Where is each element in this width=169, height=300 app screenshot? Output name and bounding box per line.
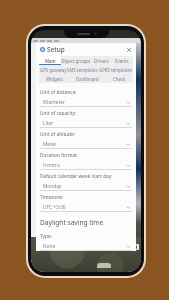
staticText: Main [45, 58, 56, 64]
button[interactable]: Drivers [91, 56, 111, 65]
staticText: Dashboard [76, 76, 99, 82]
staticText: Monday [43, 183, 62, 190]
staticText: Type: [40, 233, 52, 240]
staticText: Drivers [94, 58, 109, 64]
staticText: Kilometer [43, 99, 65, 106]
button[interactable]: Monday [40, 182, 132, 191]
staticText: Object groups [61, 58, 91, 64]
staticText: Unit of altitude: [40, 131, 76, 138]
button[interactable]: Meter [40, 140, 132, 149]
staticText: Unit of distance: [40, 89, 77, 96]
button[interactable]: Kilometer [40, 98, 132, 107]
button[interactable]: Dashboard [69, 74, 106, 83]
staticText: GPS gateway [40, 67, 67, 73]
button[interactable]: Object groups [61, 56, 91, 65]
staticText: Unit of capacity: [40, 110, 77, 117]
button[interactable]: Widgets [39, 74, 69, 83]
staticText: Events [115, 58, 129, 64]
staticText: Widgets [46, 76, 63, 82]
button[interactable]: None [40, 242, 132, 251]
staticText: Timezone: [40, 194, 64, 201]
button[interactable]: Events [111, 56, 133, 65]
staticText: Meter [43, 141, 57, 148]
staticText: Daylight saving time [40, 218, 104, 227]
staticText: None [43, 243, 56, 250]
staticText: Setup [47, 45, 65, 54]
button[interactable]: GPS gateway [39, 65, 67, 74]
button[interactable]: SMS templates [67, 65, 98, 74]
button[interactable]: Close [125, 46, 133, 54]
staticText: Duration format: [40, 152, 78, 159]
button[interactable]: Liter [40, 119, 132, 128]
staticText: SMS templates [67, 67, 98, 73]
staticText: Check [113, 76, 126, 82]
button[interactable]: UTC +3:00 [40, 203, 132, 212]
button[interactable]: Main [39, 56, 61, 65]
staticText: UTC +3:00 [43, 204, 66, 211]
staticText: Liter [43, 120, 54, 127]
button[interactable]: h:mm:s [40, 161, 132, 170]
staticText: GPRS templates [99, 67, 132, 73]
staticText: Default calendar week start day: [40, 173, 113, 180]
staticText: h:mm:s [43, 162, 60, 169]
button[interactable]: Check [106, 74, 133, 83]
button[interactable]: GPRS templates [98, 65, 133, 74]
